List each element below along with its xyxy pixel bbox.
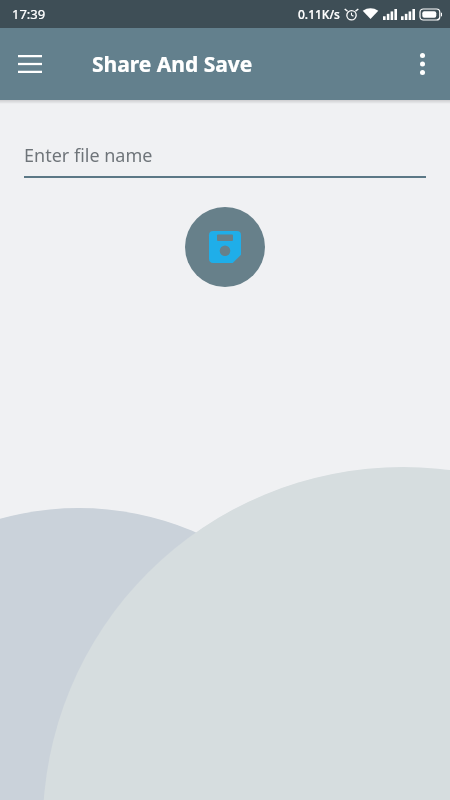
button[interactable]: Enter file name	[24, 134, 426, 178]
button[interactable]: Save file	[185, 207, 265, 287]
staticText: 17:39	[12, 5, 46, 23]
staticText: 0.11K/s	[298, 6, 340, 22]
staticText: Share And Save	[92, 50, 253, 79]
button[interactable]: More options	[398, 40, 446, 88]
staticText: Enter file name	[24, 143, 153, 168]
button[interactable]: Open navigation menu	[6, 40, 54, 88]
